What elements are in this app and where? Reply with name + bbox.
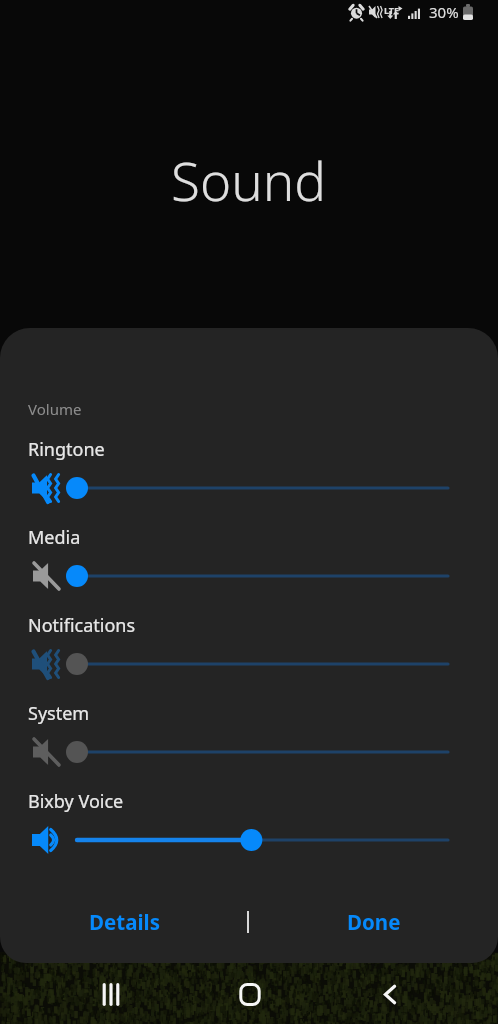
button[interactable]: Back: [349, 962, 431, 1024]
staticText: Bixby Voice: [28, 789, 124, 814]
staticText: Sound: [171, 144, 327, 216]
button[interactable]: Recent apps: [70, 962, 152, 1024]
button[interactable]: Home: [209, 962, 291, 1024]
staticText: Volume: [28, 399, 82, 419]
staticText: Notifications: [28, 613, 136, 638]
button[interactable]: Ringtone: [0, 437, 498, 507]
staticText: 30%: [429, 2, 459, 22]
button[interactable]: System: [0, 701, 498, 771]
button[interactable]: Notifications: [0, 613, 498, 683]
staticText: Media: [28, 525, 81, 550]
button[interactable]: Details: [0, 892, 249, 952]
staticText: System: [28, 701, 90, 726]
staticText: Ringtone: [28, 437, 105, 462]
button[interactable]: Bixby Voice: [0, 789, 498, 859]
button[interactable]: Done: [249, 892, 498, 952]
staticText: LTE: [384, 4, 400, 16]
staticText: Done: [347, 908, 401, 936]
button[interactable]: Media: [0, 525, 498, 595]
staticText: Details: [89, 908, 160, 936]
